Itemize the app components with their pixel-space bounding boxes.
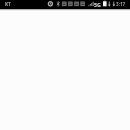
staticText: KT (5, 1, 11, 7)
staticText: 3:17 (116, 1, 126, 7)
staticText: 5G (94, 1, 101, 8)
